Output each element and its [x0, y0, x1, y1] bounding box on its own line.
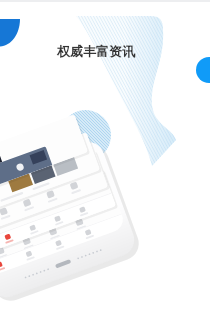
- staticText: 权威丰富资讯: [57, 43, 135, 59]
